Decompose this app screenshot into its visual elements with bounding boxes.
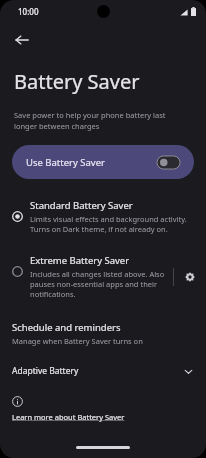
staticText: Standard Battery Saver: [30, 199, 133, 212]
button[interactable]: Schedule and reminders: [0, 319, 206, 348]
button[interactable]: Extreme Battery Saver settings: [174, 261, 206, 293]
staticText: Adaptive Battery: [12, 365, 183, 377]
staticText: Extreme Battery Saver: [30, 254, 130, 267]
button[interactable]: Learn more about Battery Saver: [12, 412, 125, 422]
staticText: Manage when Battery Saver turns on: [12, 336, 143, 346]
staticText: Save power to help your phone battery la…: [14, 110, 190, 131]
button[interactable]: Adaptive Battery: [0, 362, 206, 380]
staticText: 10:00: [18, 6, 39, 17]
button[interactable]: Use Battery Saver: [12, 145, 194, 179]
button[interactable]: Back: [8, 26, 36, 54]
staticText: Battery Saver: [14, 68, 140, 95]
staticText: Schedule and reminders: [12, 321, 121, 334]
button[interactable]: Standard Battery Saver: [0, 195, 206, 238]
staticText: Use Battery Saver: [26, 156, 157, 169]
button[interactable]: Extreme Battery Saver: [0, 250, 173, 303]
staticText: Includes all changes listed above. Also …: [30, 269, 167, 299]
staticText: Limits visual effects and background act…: [30, 214, 192, 234]
